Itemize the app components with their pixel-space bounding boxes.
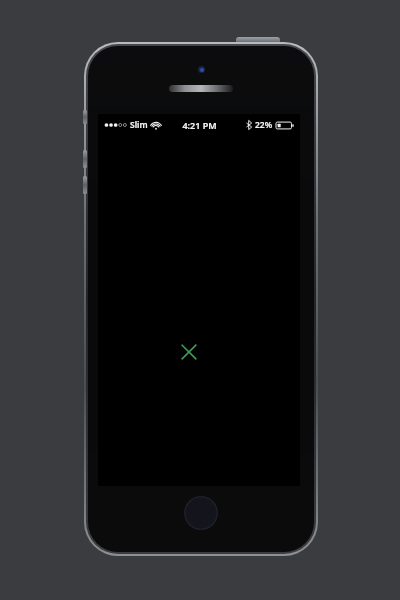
button[interactable]: Side button bbox=[83, 176, 87, 194]
staticText: 22% bbox=[255, 119, 273, 131]
staticText: Slim bbox=[130, 119, 148, 131]
button[interactable]: Side button bbox=[83, 110, 87, 124]
button[interactable]: Side button bbox=[83, 150, 87, 168]
button[interactable]: Power button bbox=[236, 37, 280, 44]
button[interactable]: Close bbox=[179, 342, 199, 362]
staticText: 4:21 PM bbox=[182, 119, 217, 131]
button[interactable]: Home bbox=[182, 494, 220, 532]
